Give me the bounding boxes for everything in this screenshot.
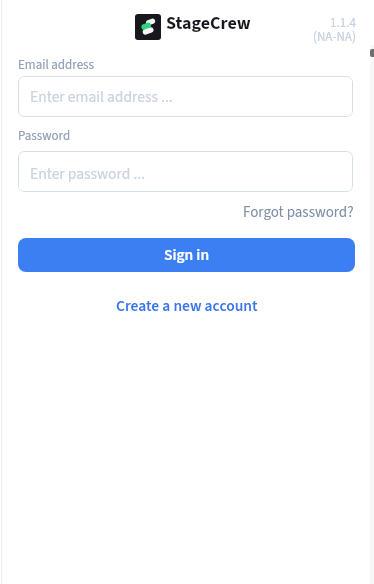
button[interactable]: Create a new account (116, 295, 258, 317)
staticText: StageCrew (166, 11, 251, 37)
button[interactable]: Sign in (18, 238, 355, 272)
staticText: (NA-NA) (313, 28, 356, 47)
button[interactable]: Enter password ... (18, 151, 353, 192)
staticText: 1.1.4 (330, 14, 356, 33)
button[interactable]: Enter email address ... (18, 76, 353, 117)
staticText: Enter password ... (30, 163, 146, 185)
staticText: Password (18, 127, 71, 146)
staticText: Email address (18, 56, 94, 75)
button[interactable]: Forgot password? (243, 202, 354, 223)
staticText: Enter email address ... (30, 86, 173, 108)
staticText: Sign in (164, 244, 210, 266)
